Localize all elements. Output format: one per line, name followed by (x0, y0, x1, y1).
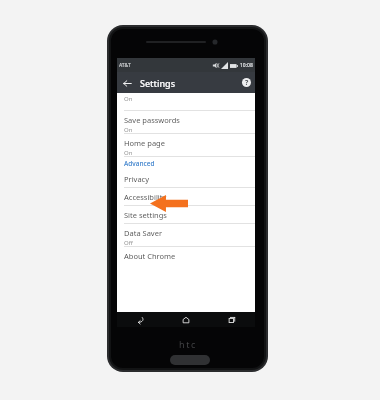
button[interactable]: Home page (117, 134, 255, 156)
staticText: 10:08 (240, 62, 253, 69)
staticText: ? (245, 78, 249, 88)
button[interactable]: About Chrome (117, 247, 255, 264)
staticText: On (124, 149, 133, 156)
button[interactable]: Help and feedback (240, 76, 253, 89)
staticText: Save passwords (124, 115, 180, 125)
button[interactable]: Home button (170, 355, 210, 365)
button[interactable]: Site settings (117, 206, 255, 223)
button[interactable]: On (117, 93, 255, 110)
staticText: Advanced (124, 159, 155, 168)
staticText: On (124, 95, 133, 103)
button[interactable]: Home (163, 312, 209, 327)
staticText: Data Saver (124, 228, 163, 238)
button[interactable]: Back (117, 312, 163, 327)
staticText: Off (124, 239, 133, 246)
staticText: Site settings (124, 210, 167, 220)
staticText: AT&T (119, 62, 131, 69)
staticText: Home page (124, 138, 165, 148)
staticText: On (124, 126, 133, 133)
button[interactable]: Data Saver (117, 224, 255, 246)
staticText: Privacy (124, 174, 150, 184)
button[interactable]: Accessibility (117, 188, 255, 205)
staticText: htc (179, 338, 197, 350)
button[interactable]: Navigate up (120, 76, 134, 90)
staticText: Accessibility (124, 192, 167, 202)
staticText: About Chrome (124, 251, 176, 261)
button[interactable]: Save passwords (117, 111, 255, 133)
button[interactable]: Privacy (117, 170, 255, 187)
staticText: Settings (140, 77, 176, 89)
button[interactable]: Recent apps (209, 312, 255, 327)
